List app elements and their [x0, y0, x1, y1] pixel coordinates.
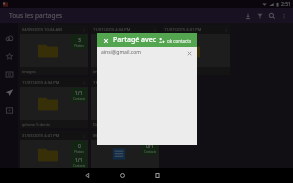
staticText: 04/09/2015 10:04 AM [22, 27, 82, 32]
staticText: Tous les partages [9, 11, 63, 20]
button[interactable]: Remove [185, 49, 193, 57]
staticText: 11/07/2015 4:04 PM [93, 27, 153, 32]
staticText: images [22, 69, 36, 74]
button[interactable]: Photos [0, 65, 18, 83]
staticText: 11/07/2015 4:04 PM [22, 80, 82, 85]
button[interactable]: Shares [0, 83, 18, 101]
staticText: Contacts [144, 150, 157, 154]
staticText: 1/1 [75, 157, 83, 164]
button[interactable]: Filter [254, 10, 266, 22]
staticText: 0/1 [146, 143, 154, 150]
staticText: 3 [78, 37, 81, 44]
button[interactable]: Settings [0, 101, 18, 119]
button[interactable]: 11/07/2015 4:01 PM [162, 25, 230, 75]
staticText: 06/03/2015 4:14 PM [93, 133, 153, 138]
staticText: ok contacts [167, 38, 192, 44]
staticText: images [93, 69, 107, 74]
button[interactable]: Recents [151, 169, 164, 182]
button[interactable]: 11/07/2015 4:02 PM [91, 78, 159, 128]
button[interactable]: Search [266, 10, 278, 22]
button[interactable]: Close [101, 36, 110, 45]
staticText: 11/07/2015 4:01 PM [164, 27, 224, 32]
staticText: 1/1 [75, 90, 83, 97]
button[interactable]: ok contacts [157, 37, 193, 44]
button[interactable]: 04/09/2015 10:04 AM [20, 25, 88, 75]
staticText: Contacts [73, 97, 86, 101]
staticText: 2:51 [281, 1, 291, 8]
button[interactable]: Back [81, 169, 94, 182]
staticText: ainsi@gmail.com [101, 49, 185, 56]
button[interactable]: Favorites [0, 47, 18, 65]
button[interactable]: 31/03/2015 4:41 PM [20, 131, 88, 168]
staticText: iphone 5 dents [22, 122, 51, 127]
button[interactable]: 06/03/2015 4:14 PM [91, 131, 159, 168]
button[interactable]: Cloud [0, 29, 18, 47]
button[interactable]: ainsi@gmail.com [97, 47, 197, 58]
staticText: Photos [74, 150, 84, 154]
button[interactable]: Home [116, 169, 129, 182]
staticText: Contacts [73, 164, 86, 168]
staticText: 11/07/2015 4:02 PM [93, 80, 153, 85]
staticText: 0 [78, 143, 81, 150]
staticText: Photos [74, 44, 84, 48]
button[interactable]: 11/07/2015 4:04 PM [20, 78, 88, 128]
button[interactable]: Download [242, 10, 254, 22]
staticText: Dim [93, 122, 101, 127]
button[interactable]: 11/07/2015 4:04 PM [91, 25, 159, 75]
staticText: 31/03/2015 4:41 PM [22, 133, 82, 138]
staticText: Partagé avec [113, 35, 157, 45]
button[interactable]: More options [278, 10, 290, 22]
